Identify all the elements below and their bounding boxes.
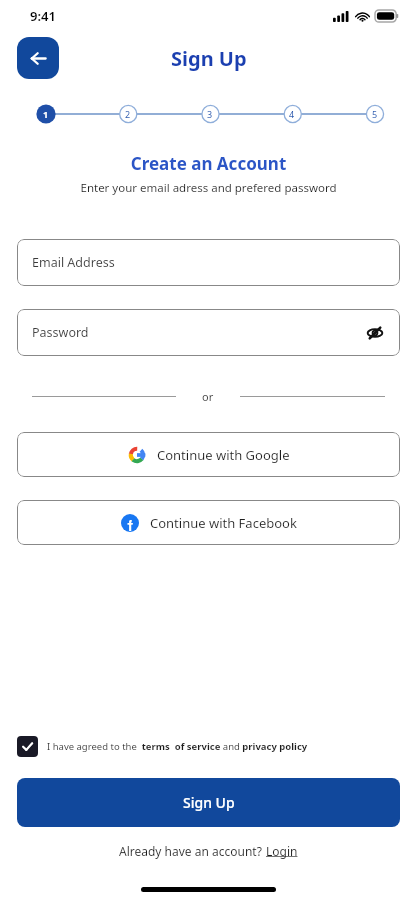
button[interactable]: Email Address [17,239,400,286]
staticText: Sign Up [171,45,247,72]
staticText: Email Address [32,254,115,271]
button[interactable]: I have agreed to the terms of service an… [17,736,400,757]
button[interactable]: Sign Up [17,778,400,827]
button[interactable]: Back [17,37,59,79]
staticText: 1 [43,108,49,120]
staticText: I have agreed to the terms of service an… [47,740,308,753]
button[interactable]: Continue with Facebook [17,500,400,545]
button[interactable]: Login [266,843,298,859]
staticText: 3 [207,108,213,120]
staticText: Enter your email adress and prefered pas… [0,180,417,196]
staticText: 5 [372,108,378,120]
staticText: Login [266,843,298,859]
button[interactable]: Password [17,309,400,356]
button[interactable]: Continue with Google [17,432,400,477]
staticText: Sign Up [183,793,235,812]
staticText: 4 [289,108,295,120]
staticText: Already have an account? [119,843,266,859]
staticText: 2 [125,108,131,120]
button[interactable]: Show password [364,322,386,344]
staticText: Continue with Google [157,446,290,464]
staticText: 9:41 [30,7,56,25]
staticText: Create an Account [0,152,417,175]
staticText: Password [32,324,89,341]
staticText: or [202,389,214,404]
staticText: Continue with Facebook [150,514,297,532]
